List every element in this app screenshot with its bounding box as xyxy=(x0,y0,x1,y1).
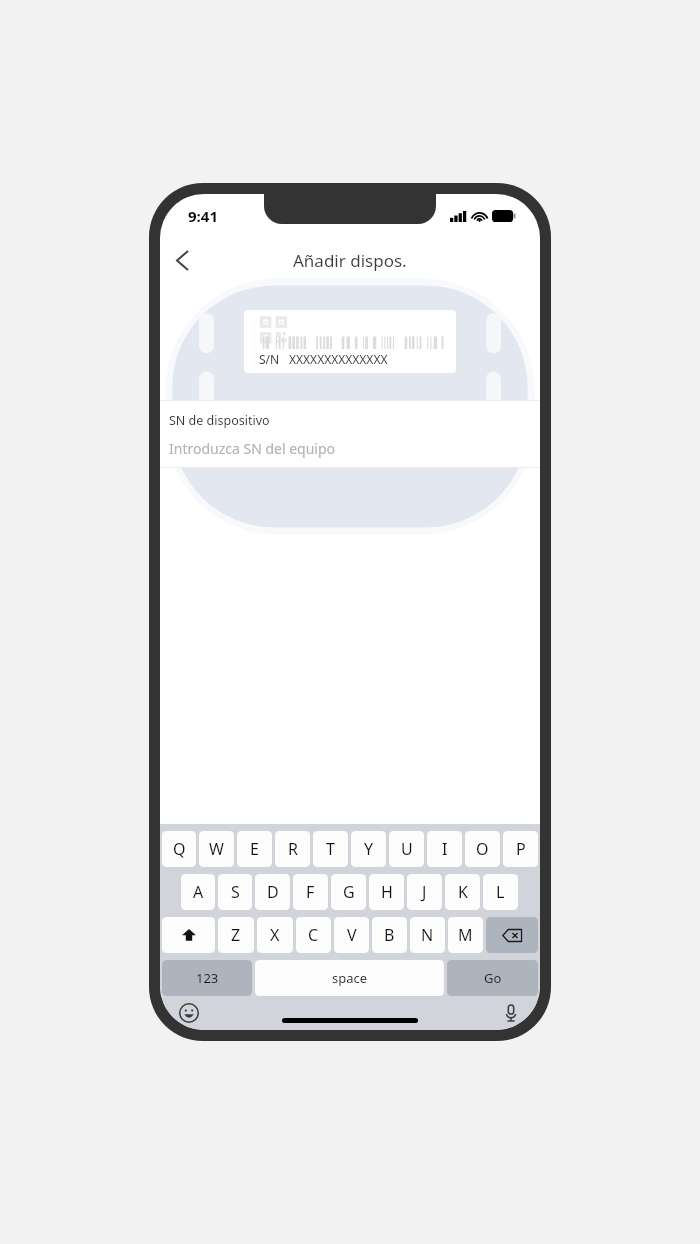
staticText: SN de dispositivo xyxy=(169,412,270,429)
button[interactable]: Q xyxy=(162,831,196,867)
staticText: S xyxy=(231,881,240,903)
button[interactable]: P xyxy=(503,831,538,867)
staticText: L xyxy=(496,881,505,903)
staticText: Z xyxy=(231,924,241,946)
staticText: O xyxy=(476,838,489,860)
button[interactable]: J xyxy=(407,874,442,910)
staticText: R xyxy=(288,838,298,860)
button[interactable]: L xyxy=(483,874,518,910)
staticText: X xyxy=(270,924,280,946)
staticText: Y xyxy=(364,838,374,860)
staticText: Añadir dispos. xyxy=(293,249,407,272)
staticText: K xyxy=(458,881,468,903)
button[interactable]: F xyxy=(293,874,328,910)
staticText: T xyxy=(326,838,335,860)
button[interactable]: S xyxy=(218,874,252,910)
button[interactable]: K xyxy=(445,874,480,910)
button[interactable]: B xyxy=(372,917,407,953)
button[interactable]: R xyxy=(275,831,310,867)
button[interactable]: Emoji xyxy=(174,998,204,1028)
staticText: U xyxy=(401,838,413,860)
staticText: 123 xyxy=(196,969,219,987)
button[interactable]: Y xyxy=(351,831,386,867)
staticText: Go xyxy=(484,969,502,987)
button[interactable]: N xyxy=(410,917,445,953)
button[interactable]: A xyxy=(181,874,215,910)
button[interactable]: I xyxy=(427,831,462,867)
button[interactable]: 123 xyxy=(162,960,252,996)
button[interactable]: O xyxy=(465,831,500,867)
button[interactable]: Dictation xyxy=(496,998,526,1028)
button[interactable]: Z xyxy=(218,917,254,953)
staticText: W xyxy=(209,838,224,860)
staticText: E xyxy=(250,838,259,860)
staticText: B xyxy=(384,924,395,946)
button[interactable]: Back xyxy=(160,238,204,282)
button[interactable]: U xyxy=(389,831,424,867)
button[interactable]: Shift xyxy=(162,917,215,953)
button[interactable]: D xyxy=(255,874,290,910)
staticText: N xyxy=(421,924,434,946)
staticText: V xyxy=(347,924,357,946)
staticText: S/N xyxy=(259,351,280,367)
staticText: XXXXXXXXXXXXXX xyxy=(289,351,388,367)
staticText: J xyxy=(422,881,427,903)
staticText: H xyxy=(381,881,393,903)
button[interactable]: X xyxy=(257,917,293,953)
button[interactable]: Introduzca SN del equipo xyxy=(160,429,540,467)
staticText: 9:41 xyxy=(188,206,218,226)
staticText: P xyxy=(516,838,526,860)
staticText: A xyxy=(193,881,204,903)
staticText: Introduzca SN del equipo xyxy=(169,439,336,458)
button[interactable]: C xyxy=(296,917,331,953)
button[interactable]: H xyxy=(369,874,404,910)
button[interactable]: E xyxy=(237,831,272,867)
staticText: I xyxy=(442,838,448,860)
staticText: D xyxy=(267,881,279,903)
staticText: M xyxy=(458,924,473,946)
button[interactable]: T xyxy=(313,831,348,867)
button[interactable]: space xyxy=(255,960,444,996)
staticText: space xyxy=(332,969,368,987)
button[interactable]: W xyxy=(199,831,234,867)
button[interactable]: V xyxy=(334,917,369,953)
staticText: C xyxy=(308,924,319,946)
button[interactable]: Go xyxy=(447,960,538,996)
button[interactable]: G xyxy=(331,874,366,910)
staticText: F xyxy=(306,881,315,903)
staticText: Q xyxy=(173,838,186,860)
staticText: G xyxy=(343,881,355,903)
button[interactable]: M xyxy=(448,917,483,953)
button[interactable]: Backspace xyxy=(486,917,538,953)
